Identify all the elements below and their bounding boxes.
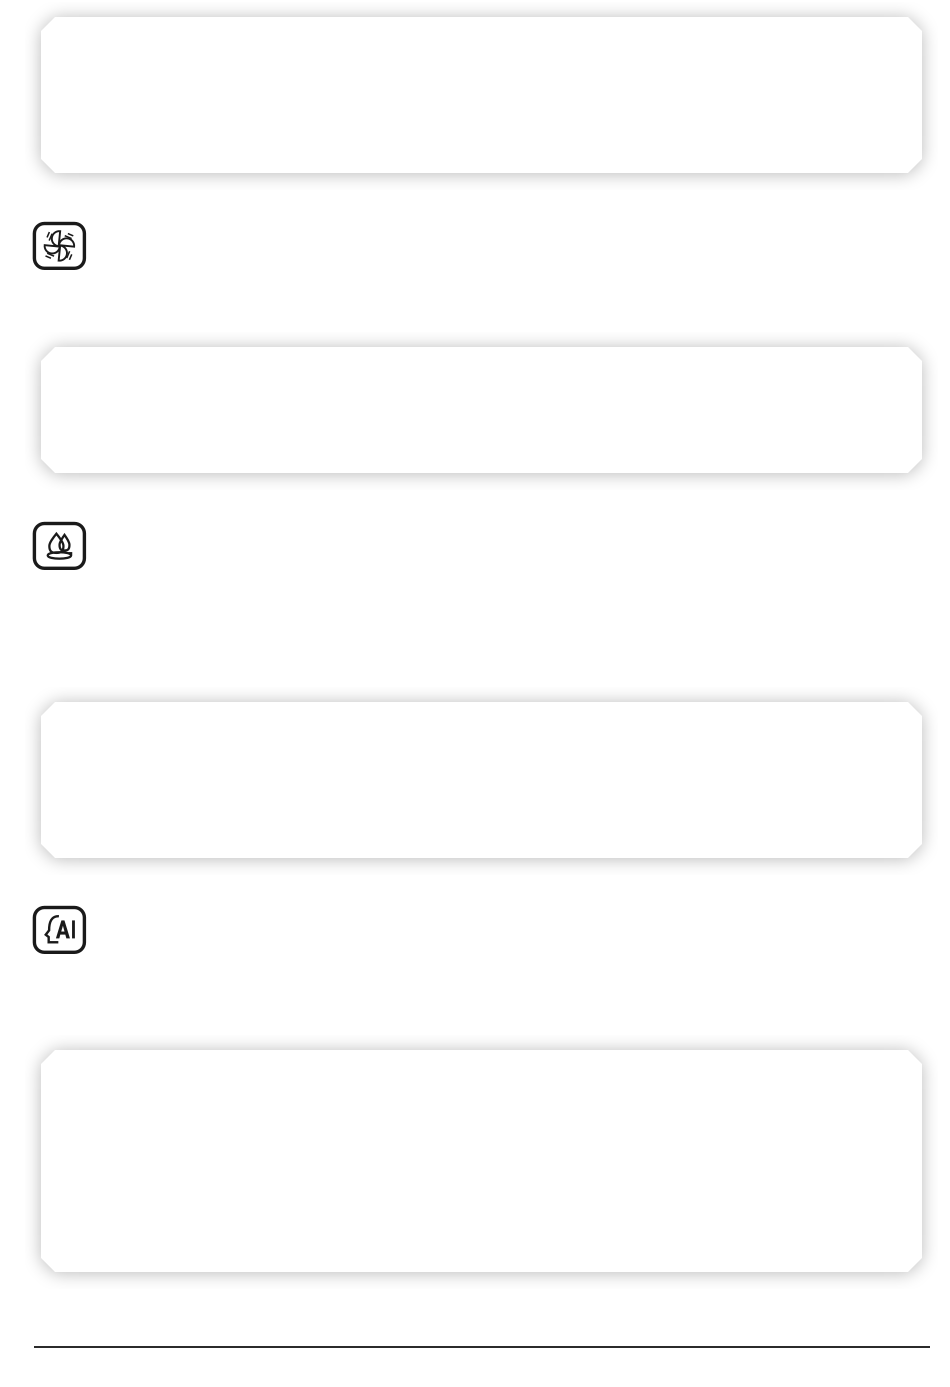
button[interactable]: Water [33, 522, 85, 569]
button[interactable]: Fan [33, 222, 85, 269]
button[interactable]: AI [33, 906, 85, 953]
